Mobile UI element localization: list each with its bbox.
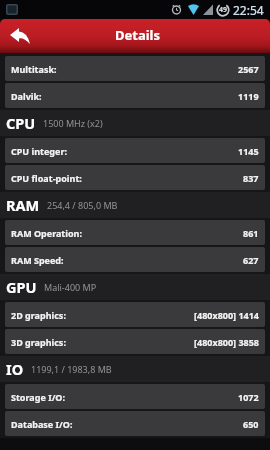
- staticText: Storage I/O:: [11, 391, 66, 403]
- staticText: [480x800] 1414: [194, 309, 259, 321]
- staticText: 22:54: [233, 2, 264, 18]
- staticText: Multitask:: [11, 63, 57, 75]
- staticText: CPU: [6, 113, 36, 133]
- button[interactable]: 3D graphics:: [5, 329, 265, 354]
- staticText: 1145: [238, 145, 259, 157]
- staticText: IO: [6, 359, 24, 379]
- button[interactable]: Multitask:: [5, 56, 265, 81]
- staticText: 2567: [238, 63, 259, 75]
- button[interactable]: 2D graphics:: [5, 302, 265, 327]
- staticText: 650: [243, 418, 259, 430]
- staticText: 2D graphics:: [11, 309, 66, 321]
- button[interactable]: CPU integer:: [5, 138, 265, 163]
- staticText: GPU: [6, 277, 37, 297]
- staticText: 1072: [238, 391, 259, 403]
- button[interactable]: Database I/O:: [5, 411, 265, 436]
- staticText: 1500 MHz (x2): [43, 117, 103, 129]
- staticText: 861: [243, 227, 259, 239]
- staticText: CPU float-point:: [11, 172, 82, 184]
- button[interactable]: RAM Operation:: [5, 220, 265, 245]
- staticText: RAM Speed:: [11, 254, 64, 266]
- button[interactable]: [6, 22, 36, 50]
- staticText: Database I/O:: [11, 418, 73, 430]
- staticText: [480x800] 3858: [194, 336, 259, 348]
- staticText: 3D graphics:: [11, 336, 66, 348]
- staticText: Dalvik:: [11, 90, 42, 102]
- staticText: 1119: [238, 90, 259, 102]
- staticText: CPU integer:: [11, 145, 67, 157]
- staticText: 1199,1 / 1983,8 MB: [31, 363, 112, 375]
- button[interactable]: Dalvik:: [5, 83, 265, 108]
- staticText: Details: [115, 26, 160, 44]
- staticText: RAM: [6, 195, 40, 215]
- staticText: 627: [243, 254, 259, 266]
- button[interactable]: CPU float-point:: [5, 165, 265, 190]
- staticText: 49: [219, 5, 228, 15]
- staticText: RAM Operation:: [11, 227, 82, 239]
- button[interactable]: Storage I/O:: [5, 384, 265, 409]
- staticText: 254,4 / 805,0 MB: [47, 199, 118, 211]
- staticText: 837: [243, 172, 259, 184]
- button[interactable]: RAM Speed:: [5, 247, 265, 272]
- staticText: Mali-400 MP: [44, 281, 97, 293]
